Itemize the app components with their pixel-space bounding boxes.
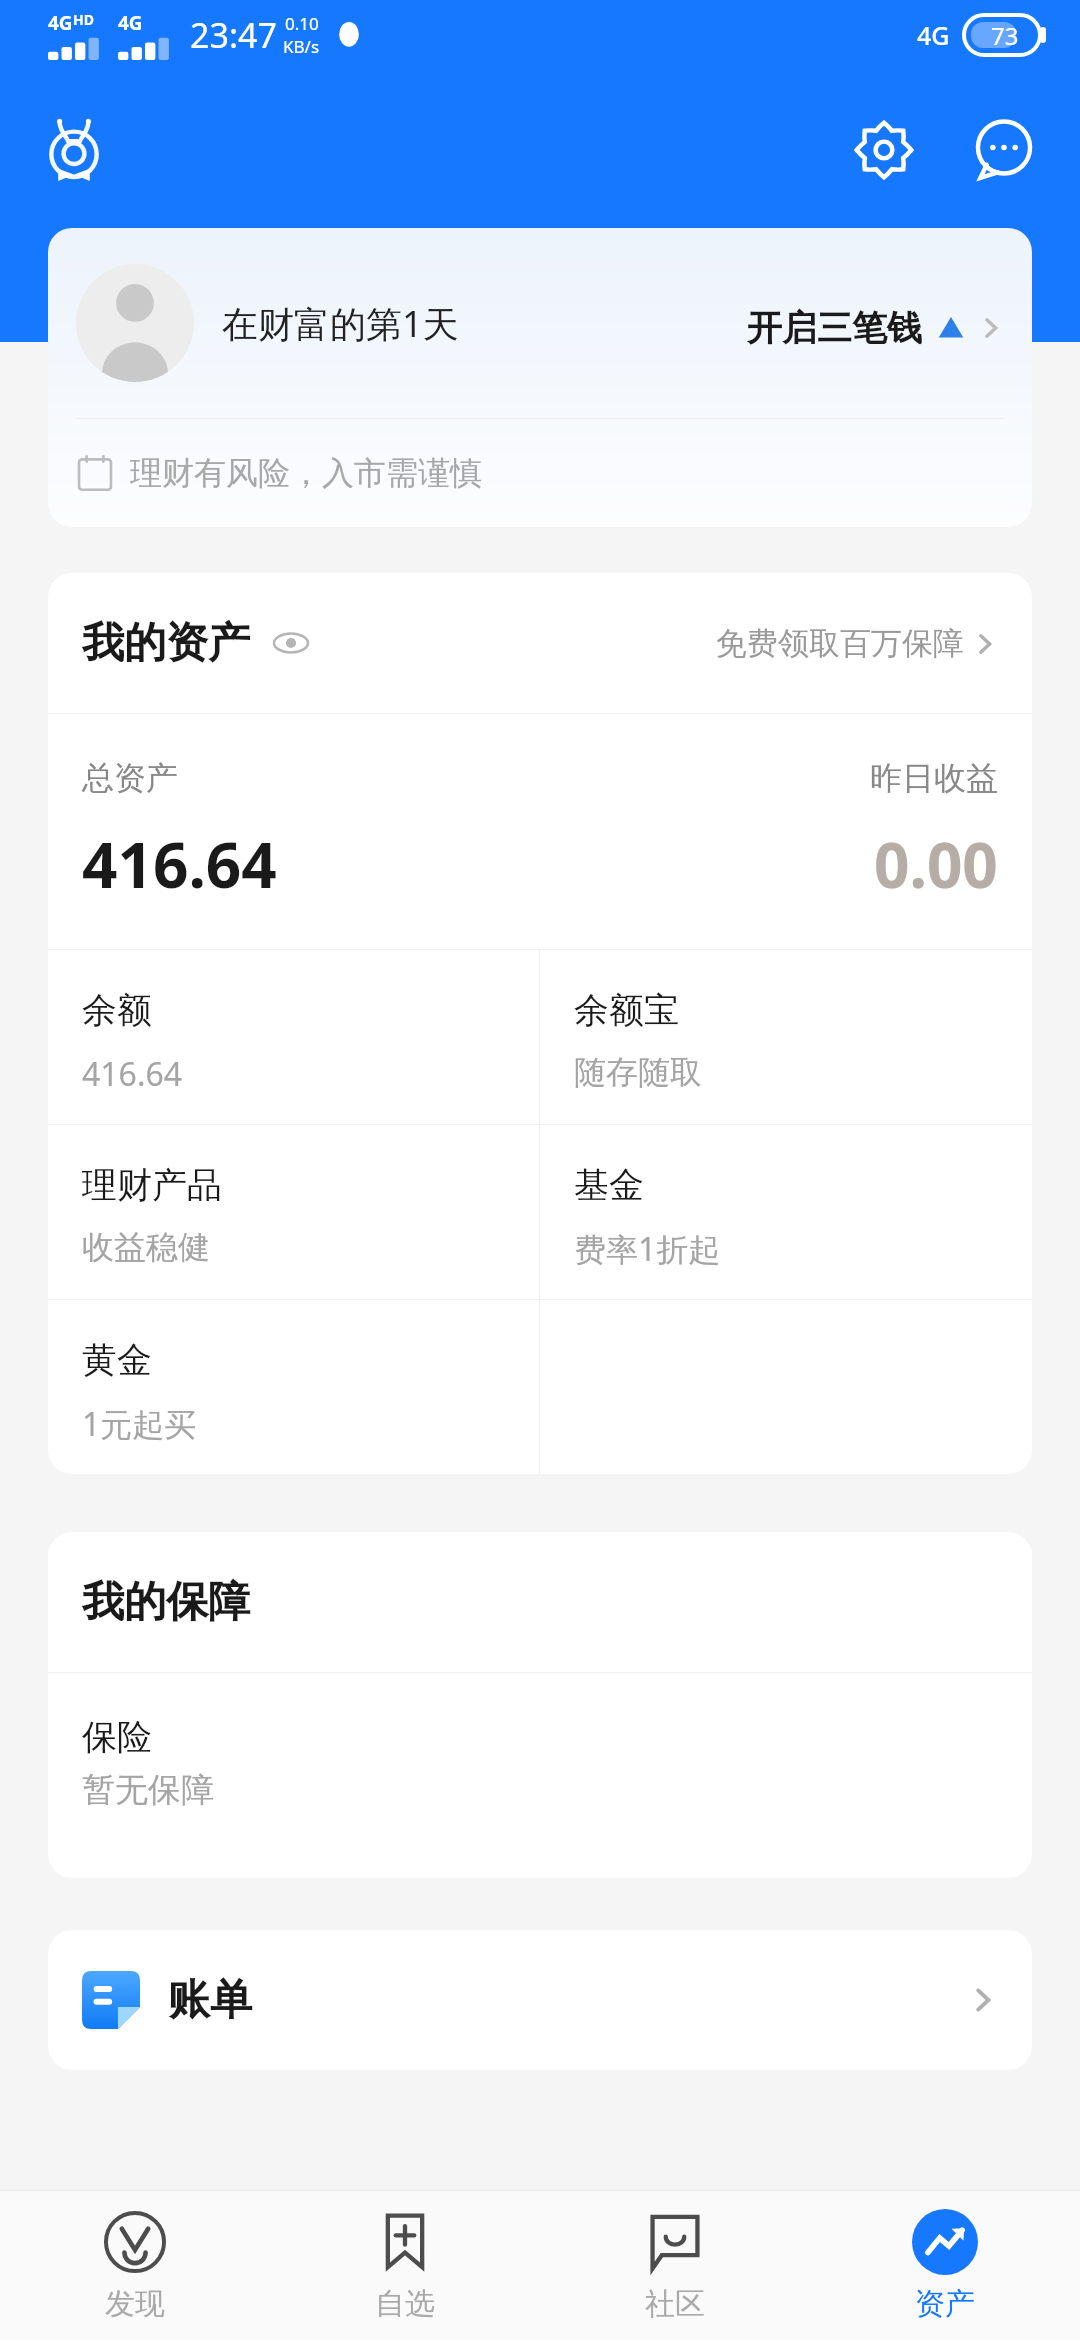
staticText: 73 xyxy=(991,19,1019,52)
button[interactable]: 自选 xyxy=(270,2191,540,2340)
button[interactable]: Settings xyxy=(842,108,926,192)
staticText: 保险 xyxy=(82,1715,152,1759)
button[interactable]: 我的资产 xyxy=(82,573,998,713)
button[interactable]: 免费领取百万保障 xyxy=(716,624,998,663)
staticText: 费率1折起 xyxy=(574,1227,721,1271)
staticText: 收益稳健 xyxy=(82,1227,210,1267)
staticText: 总资产 xyxy=(82,758,178,798)
staticText: 在财富的第1天 xyxy=(222,299,459,348)
button[interactable]: Customer service xyxy=(962,108,1046,192)
button[interactable]: Ant Fortune xyxy=(34,110,114,190)
button[interactable]: 资产 xyxy=(810,2191,1080,2340)
staticText: 0.10 xyxy=(285,12,319,35)
staticText: 理财有风险，入市需谨慎 xyxy=(130,453,482,493)
button[interactable]: 在财富的第1天 xyxy=(48,228,1032,527)
staticText: HD xyxy=(73,10,94,29)
button[interactable]: 余额宝 xyxy=(540,950,1032,1124)
staticText: 23:47 xyxy=(190,12,277,58)
staticText: 416.64 xyxy=(82,822,277,906)
staticText: 我的保障 xyxy=(82,1576,250,1629)
button[interactable]: 基金 xyxy=(540,1125,1032,1299)
staticText: 黄金 xyxy=(82,1338,152,1382)
staticText: 暂无保障 xyxy=(82,1769,214,1811)
staticText: 发现 xyxy=(105,2285,165,2323)
staticText: 免费领取百万保障 xyxy=(716,624,964,663)
staticText: 开启三笔钱 xyxy=(747,306,922,350)
button[interactable]: 发现 xyxy=(0,2191,270,2340)
button[interactable]: 总资产 xyxy=(82,714,998,949)
staticText: 基金 xyxy=(574,1163,644,1207)
staticText: 0.00 xyxy=(874,822,998,906)
button[interactable]: 社区 xyxy=(540,2191,810,2340)
staticText: 理财产品 xyxy=(82,1163,222,1207)
button[interactable]: 黄金 xyxy=(48,1300,539,1474)
staticText: 1元起买 xyxy=(82,1402,197,1446)
staticText: 4G xyxy=(118,10,143,36)
staticText: 社区 xyxy=(645,2285,705,2323)
button[interactable]: 我的保障 xyxy=(82,1532,998,1672)
staticText: 我的资产 xyxy=(82,617,250,670)
staticText: 余额宝 xyxy=(574,988,679,1032)
staticText: 余额 xyxy=(82,988,152,1032)
staticText: KB/s xyxy=(283,35,320,58)
staticText: 随存随取 xyxy=(574,1052,702,1092)
staticText: 416.64 xyxy=(82,1052,183,1096)
staticText: 4G xyxy=(48,10,73,36)
button[interactable]: 余额 xyxy=(48,950,539,1124)
staticText: 昨日收益 xyxy=(870,758,998,798)
staticText: 账单 xyxy=(168,1974,252,2027)
button[interactable]: 保险 xyxy=(48,1673,1032,1878)
button[interactable]: 理财产品 xyxy=(48,1125,539,1299)
staticText: 资产 xyxy=(915,2285,975,2323)
staticText: 自选 xyxy=(375,2285,435,2323)
staticText: 4G xyxy=(917,18,950,52)
button[interactable]: 账单 xyxy=(48,1930,1032,2070)
